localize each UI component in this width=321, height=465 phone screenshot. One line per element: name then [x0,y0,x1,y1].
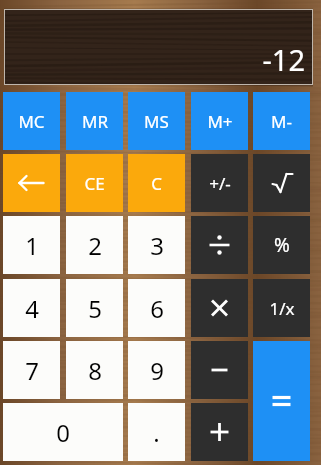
button[interactable]: 5 [66,279,123,337]
button[interactable]: 9 [128,341,185,399]
staticText: MR [82,110,108,133]
button[interactable]: 8 [66,341,123,399]
staticText: -12 [262,40,305,79]
button[interactable]: 6 [128,279,185,337]
button[interactable]: Multiply [191,279,248,337]
staticText: 1 [25,229,39,262]
staticText: 4 [25,292,39,325]
button[interactable]: Divide [191,216,248,274]
button[interactable]: . [128,403,185,461]
button[interactable]: M+ [191,92,248,150]
button[interactable]: Backspace [3,154,60,212]
staticText: 6 [150,292,164,325]
button[interactable]: Square root [253,154,310,212]
button[interactable]: MR [66,92,123,150]
button[interactable]: MS [128,92,185,150]
staticText: 7 [25,354,39,387]
button[interactable]: MC [3,92,60,150]
button[interactable]: Plus [191,403,248,461]
staticText: CE [84,172,105,195]
button[interactable]: 0 [3,403,123,461]
staticText: 3 [150,229,164,262]
staticText: 5 [88,292,102,325]
button[interactable]: 4 [3,279,60,337]
staticText: % [274,232,290,258]
staticText: C [151,172,162,195]
button[interactable]: CE [66,154,123,212]
button[interactable]: 7 [3,341,60,399]
button[interactable]: M- [253,92,310,150]
button[interactable]: C [128,154,185,212]
staticText: 0 [56,416,70,449]
staticText: 1/x [269,297,295,320]
staticText: MS [144,110,169,133]
button[interactable]: 1/x [253,279,310,337]
staticText: . [153,416,160,449]
staticText: +/- [209,172,231,195]
staticText: 8 [88,354,102,387]
button[interactable]: % [253,216,310,274]
staticText: M- [271,110,292,133]
staticText: MC [18,110,45,133]
button[interactable]: 1 [3,216,60,274]
button[interactable]: 3 [128,216,185,274]
staticText: M+ [207,110,233,133]
button[interactable]: +/- [191,154,248,212]
button[interactable]: 2 [66,216,123,274]
button[interactable]: Minus [191,341,248,399]
staticText: 9 [150,354,164,387]
button[interactable]: Equals [253,341,310,461]
staticText: 2 [88,229,102,262]
